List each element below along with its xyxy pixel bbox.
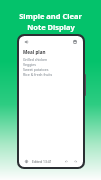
- button[interactable]: Redo: [72, 158, 79, 165]
- staticText: Simple and Clear: [19, 11, 82, 21]
- staticText: Veggies: [23, 62, 36, 67]
- button[interactable]: Delete note: [71, 38, 79, 46]
- staticText: Sweet potatoes: [23, 67, 49, 72]
- staticText: Grilled chicken: [23, 57, 48, 62]
- button[interactable]: Meal plan: [23, 49, 79, 156]
- staticText: Meal plan: [23, 49, 46, 55]
- button[interactable]: Note info: [23, 158, 30, 165]
- button[interactable]: Back: [23, 38, 31, 46]
- staticText: Note Display: [27, 22, 75, 32]
- button[interactable]: Undo: [63, 158, 70, 165]
- button[interactable]: Edited 13:41: [32, 159, 52, 164]
- staticText: Rice & fresh fruits: [23, 72, 53, 77]
